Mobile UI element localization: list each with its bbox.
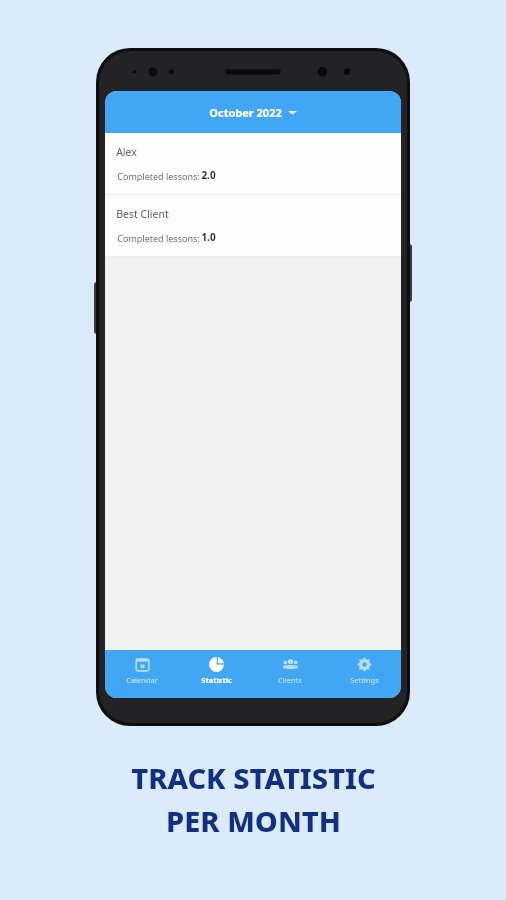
button[interactable]: October 2022 xyxy=(199,100,307,125)
staticText: Completed lessons: xyxy=(116,170,201,182)
staticText: TRACK STATISTIC xyxy=(131,758,376,797)
staticText: Best Client xyxy=(116,207,169,221)
staticText: Calendar xyxy=(126,675,158,685)
button[interactable]: Best Client xyxy=(105,195,401,256)
staticText: Completed lessons: xyxy=(116,232,201,244)
button[interactable]: Alex xyxy=(105,133,401,194)
staticText: PER MONTH xyxy=(166,801,341,840)
button[interactable]: Statistic xyxy=(179,650,253,698)
other: Statistic xyxy=(209,657,224,672)
staticText: 1.0 xyxy=(201,230,216,244)
staticText: October 2022 xyxy=(209,105,282,120)
button[interactable]: Clients xyxy=(253,650,327,698)
button[interactable]: Settings xyxy=(327,650,401,698)
button[interactable]: Calendar xyxy=(105,650,179,698)
other: Settings xyxy=(357,657,372,672)
staticText: Alex xyxy=(116,145,137,159)
staticText: Statistic xyxy=(201,675,232,685)
staticText: Clients xyxy=(278,675,302,685)
other: Clients xyxy=(283,657,298,672)
staticText: 2.0 xyxy=(201,168,216,182)
other: Calendar xyxy=(135,657,150,672)
staticText: Settings xyxy=(350,675,379,685)
